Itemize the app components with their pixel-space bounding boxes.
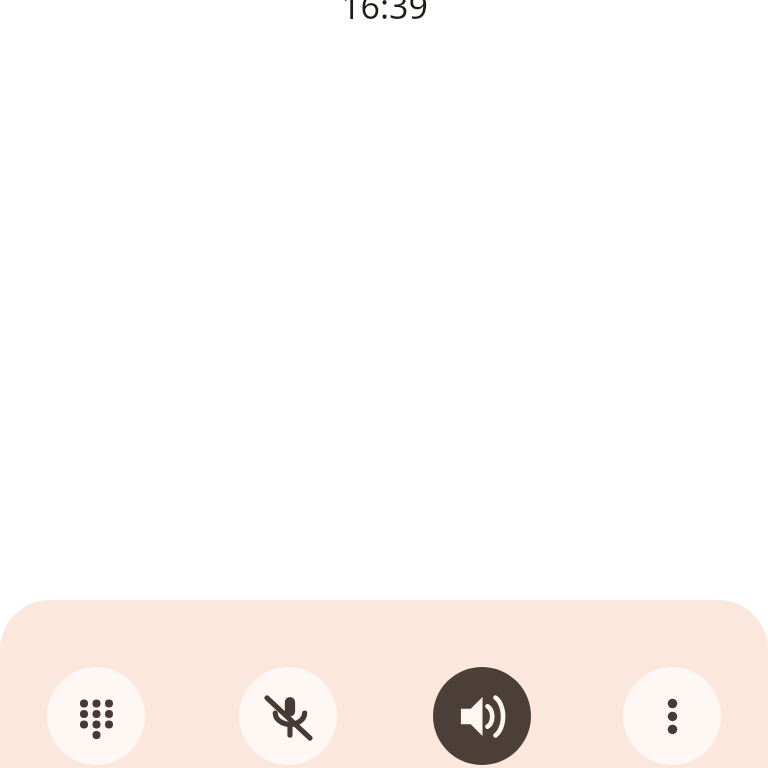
staticText: 16:39 [341, 0, 428, 29]
button[interactable]: Speaker [433, 667, 531, 765]
button[interactable]: Unmute microphone [239, 667, 337, 765]
button[interactable]: More options [623, 667, 721, 765]
button[interactable]: Dialpad [47, 667, 145, 765]
